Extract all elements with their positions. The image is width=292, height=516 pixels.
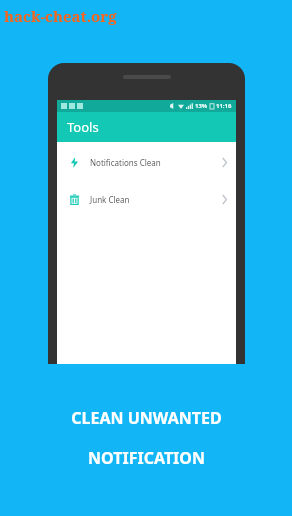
staticText: hack-cheat.org: [4, 6, 117, 26]
staticText: CLEAN UNWANTED: [71, 407, 222, 429]
staticText: Junk Clean: [90, 194, 130, 205]
button[interactable]: Notifications Clean: [57, 151, 236, 173]
staticText: NOTIFICATION: [88, 447, 205, 469]
staticText: 13%: [195, 102, 208, 110]
staticText: Tools: [67, 118, 99, 136]
staticText: 11:16: [216, 102, 232, 110]
staticText: Notifications Clean: [90, 157, 161, 168]
button[interactable]: Junk Clean: [57, 188, 236, 210]
